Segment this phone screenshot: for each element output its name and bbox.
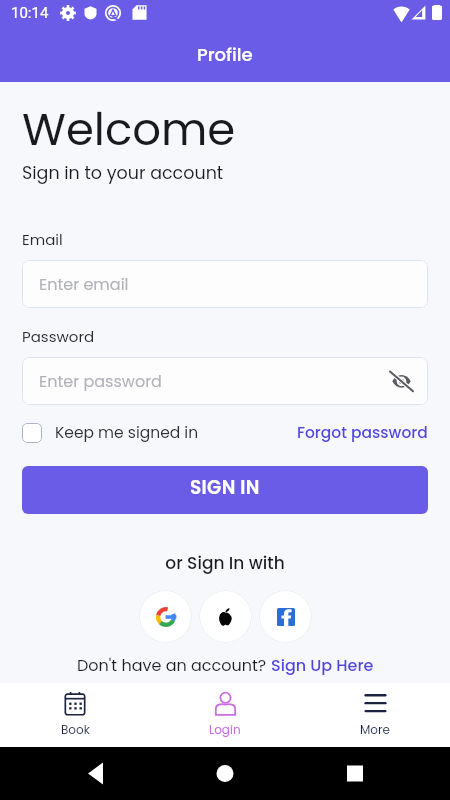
- staticText: or Sign In with: [22, 551, 428, 575]
- button[interactable]: Sign Up Here: [271, 654, 374, 676]
- staticText: Welcome: [22, 98, 236, 161]
- button[interactable]: Show password: [388, 368, 414, 394]
- staticText: Forgot password: [297, 422, 428, 444]
- button[interactable]: SIGN IN: [22, 466, 428, 514]
- staticText: Profile: [197, 42, 253, 67]
- staticText: Enter password: [39, 370, 162, 392]
- staticText: Login: [209, 721, 241, 738]
- staticText: Sign in to your account: [22, 161, 224, 186]
- staticText: 10:14: [11, 4, 49, 22]
- staticText: More: [360, 721, 390, 738]
- staticText: Enter email: [39, 273, 129, 295]
- button[interactable]: Sign in with Google: [139, 590, 192, 643]
- button[interactable]: Forgot password: [297, 422, 428, 444]
- staticText: Email: [22, 229, 63, 250]
- button[interactable]: Enter password: [22, 357, 428, 405]
- staticText: Password: [22, 326, 95, 347]
- button[interactable]: Book: [0, 683, 150, 747]
- staticText: Sign Up Here: [271, 654, 374, 676]
- button[interactable]: More: [300, 683, 450, 747]
- staticText: Don't have an account?: [77, 654, 271, 676]
- button[interactable]: Sign in with Apple: [199, 590, 252, 643]
- button[interactable]: Enter email: [22, 260, 428, 308]
- button[interactable]: Keep me signed in: [22, 422, 199, 444]
- button[interactable]: Login: [150, 683, 300, 747]
- staticText: Book: [61, 721, 90, 738]
- staticText: SIGN IN: [190, 475, 260, 501]
- staticText: Keep me signed in: [55, 422, 199, 444]
- button[interactable]: Sign in with Facebook: [259, 590, 312, 643]
